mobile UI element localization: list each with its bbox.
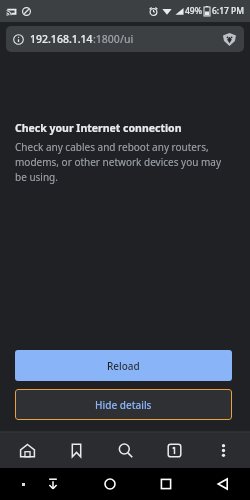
staticText: Reload xyxy=(107,359,140,373)
button[interactable]: Home xyxy=(10,433,44,467)
staticText: 192.168.1.14 xyxy=(30,32,93,46)
button[interactable]: Hide details xyxy=(15,389,232,420)
button[interactable]: Hide keyboard xyxy=(40,471,66,497)
button[interactable]: Search xyxy=(108,433,142,467)
button[interactable]: Reload xyxy=(15,350,232,381)
staticText: 49% xyxy=(185,5,202,17)
staticText: Check any cables and reboot any routers,… xyxy=(15,140,228,184)
staticText: Check your Internet connection xyxy=(15,121,182,135)
button[interactable]: Home xyxy=(97,471,123,497)
button[interactable]: Recents xyxy=(153,471,179,497)
button[interactable]: 192.168.1.14 xyxy=(6,26,244,52)
button[interactable]: More options xyxy=(206,433,240,467)
staticText: Hide details xyxy=(95,398,152,412)
staticText: 6:17 PM xyxy=(212,5,245,17)
button[interactable]: Back xyxy=(210,471,236,497)
button[interactable]: Brave Shields xyxy=(219,29,239,49)
staticText: :1800/ui xyxy=(93,32,134,46)
button[interactable]: Bookmarks xyxy=(59,433,93,467)
button[interactable]: Tabs xyxy=(157,433,191,467)
